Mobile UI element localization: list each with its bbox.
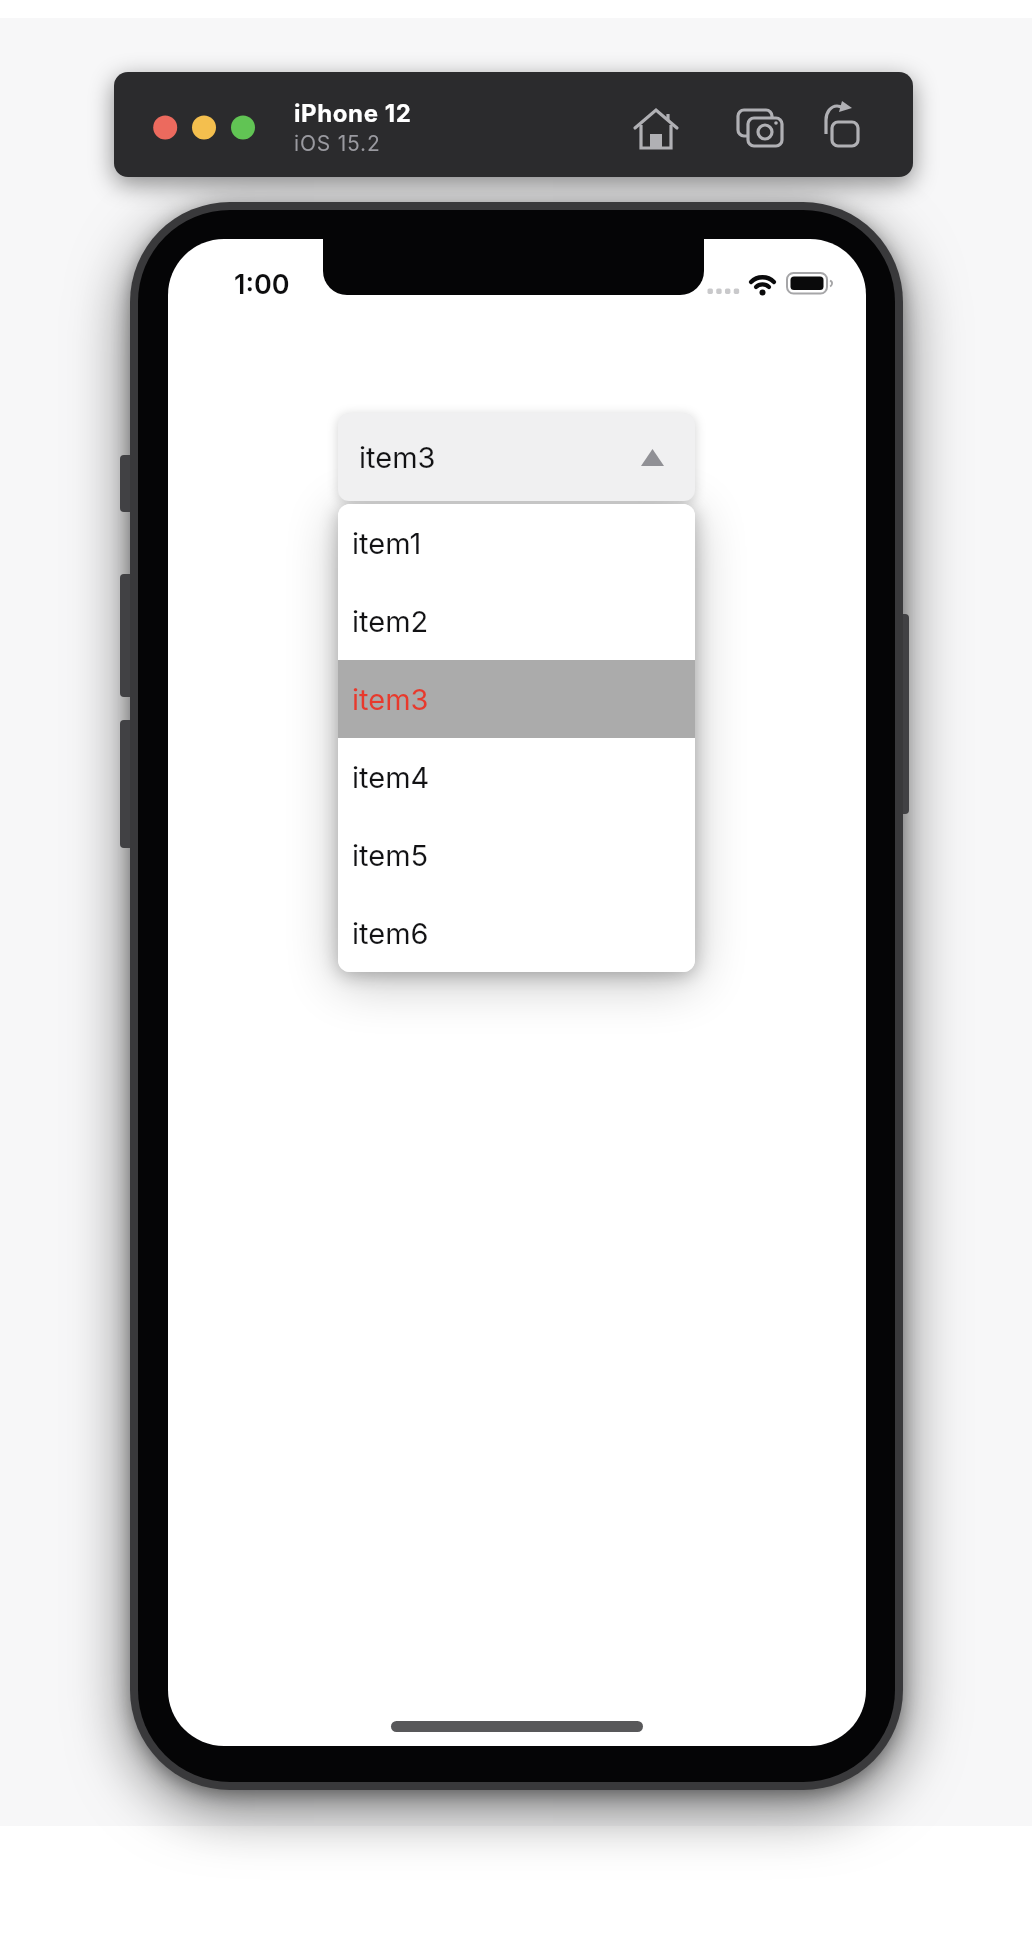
staticText: item5 bbox=[352, 838, 429, 873]
staticText: 1:00 bbox=[234, 268, 290, 301]
staticText: item1 bbox=[352, 526, 422, 561]
button[interactable] bbox=[626, 100, 686, 160]
staticText: iOS 15.2 bbox=[294, 131, 381, 156]
button[interactable] bbox=[815, 100, 875, 160]
button[interactable]: item3 bbox=[338, 413, 695, 501]
staticText: iPhone 12 bbox=[294, 99, 412, 128]
button[interactable]: item1 bbox=[338, 504, 695, 582]
staticText: item2 bbox=[352, 604, 429, 639]
staticText: item6 bbox=[352, 916, 429, 951]
staticText: item3 bbox=[359, 440, 436, 475]
button[interactable] bbox=[730, 100, 790, 160]
button[interactable]: item5 bbox=[338, 816, 695, 894]
button[interactable]: item4 bbox=[338, 738, 695, 816]
button[interactable]: item3 bbox=[338, 660, 695, 738]
button[interactable]: item2 bbox=[338, 582, 695, 660]
staticText: item3 bbox=[352, 682, 429, 717]
button[interactable]: item6 bbox=[338, 894, 695, 972]
staticText: item4 bbox=[352, 760, 430, 795]
